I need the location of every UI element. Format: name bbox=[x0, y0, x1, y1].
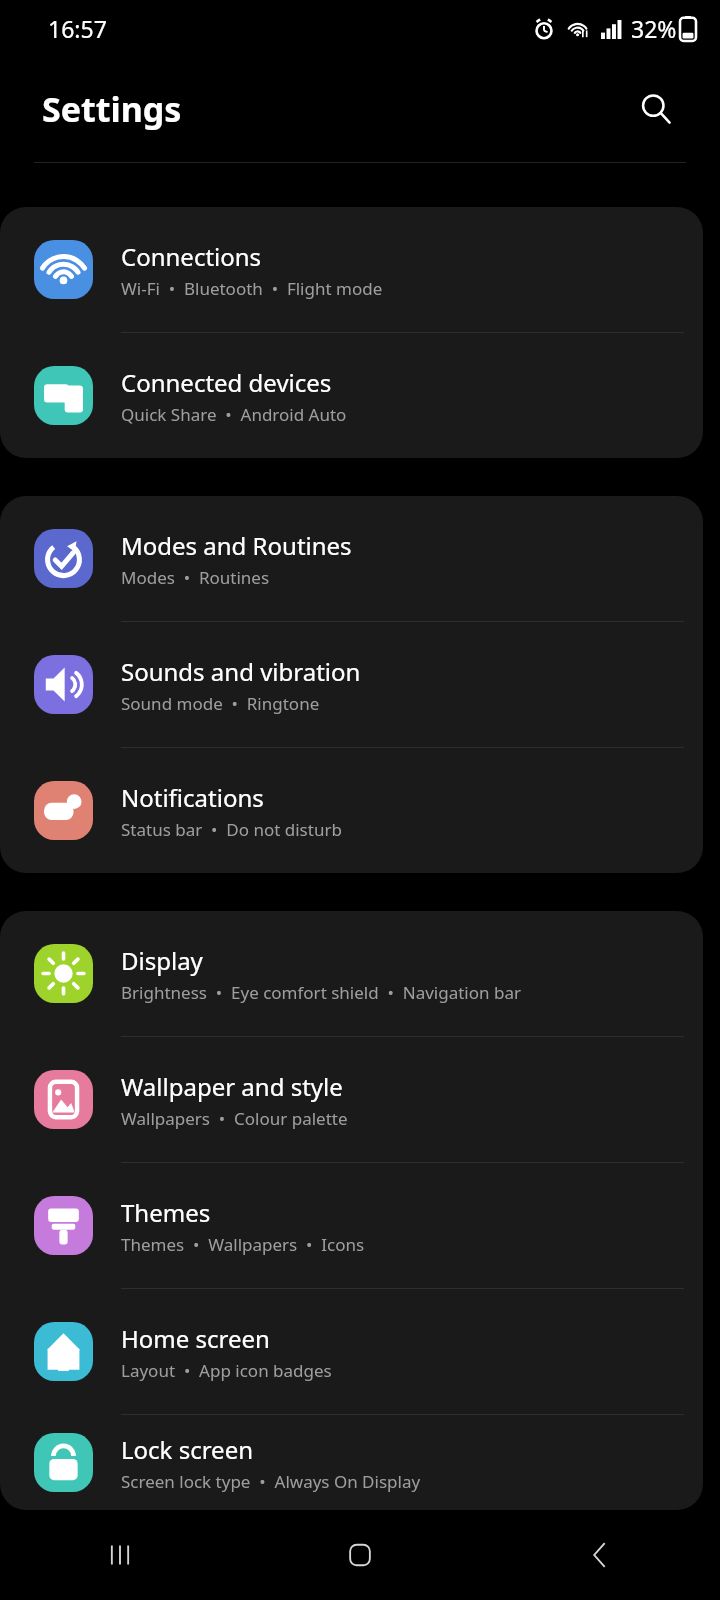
staticText: 32% bbox=[631, 13, 677, 44]
button[interactable]: Connections bbox=[0, 207, 703, 332]
staticText: Layout • App icon badges bbox=[121, 1359, 332, 1382]
button[interactable]: Notifications bbox=[0, 748, 703, 873]
button[interactable]: Connected devices bbox=[0, 333, 703, 458]
button[interactable]: Themes bbox=[0, 1163, 703, 1288]
staticText: Wallpapers • Colour palette bbox=[121, 1107, 348, 1130]
staticText: 16:57 bbox=[48, 13, 107, 44]
staticText: Modes • Routines bbox=[121, 566, 270, 589]
staticText: Themes bbox=[121, 1196, 211, 1229]
staticText: Wi-Fi • Bluetooth • Flight mode bbox=[121, 277, 383, 300]
staticText: Quick Share • Android Auto bbox=[121, 403, 347, 426]
button[interactable]: Wallpaper and style bbox=[0, 1037, 703, 1162]
button[interactable]: Home screen bbox=[0, 1289, 703, 1414]
staticText: Display bbox=[121, 944, 203, 977]
button[interactable]: Modes and Routines bbox=[0, 496, 703, 621]
staticText: Sound mode • Ringtone bbox=[121, 692, 320, 715]
button[interactable]: Sounds and vibration bbox=[0, 622, 703, 747]
button[interactable]: Lock screen bbox=[0, 1415, 703, 1510]
staticText: Brightness • Eye comfort shield • Naviga… bbox=[121, 981, 521, 1004]
staticText: Status bar • Do not disturb bbox=[121, 818, 342, 841]
button[interactable]: Home bbox=[240, 1510, 480, 1600]
staticText: Settings bbox=[42, 86, 182, 132]
staticText: Screen lock type • Always On Display bbox=[121, 1470, 421, 1493]
staticText: Notifications bbox=[121, 781, 264, 814]
staticText: Connected devices bbox=[121, 366, 332, 399]
button[interactable]: Search bbox=[632, 85, 680, 133]
staticText: Home screen bbox=[121, 1322, 270, 1355]
staticText: Modes and Routines bbox=[121, 529, 352, 562]
button[interactable]: Recent apps bbox=[0, 1510, 240, 1600]
staticText: Connections bbox=[121, 240, 262, 273]
staticText: Sounds and vibration bbox=[121, 655, 361, 688]
staticText: Lock screen bbox=[121, 1433, 254, 1466]
button[interactable]: Display bbox=[0, 911, 703, 1036]
staticText: Themes • Wallpapers • Icons bbox=[121, 1233, 365, 1256]
staticText: Wallpaper and style bbox=[121, 1070, 343, 1103]
button[interactable]: Back bbox=[480, 1510, 720, 1600]
